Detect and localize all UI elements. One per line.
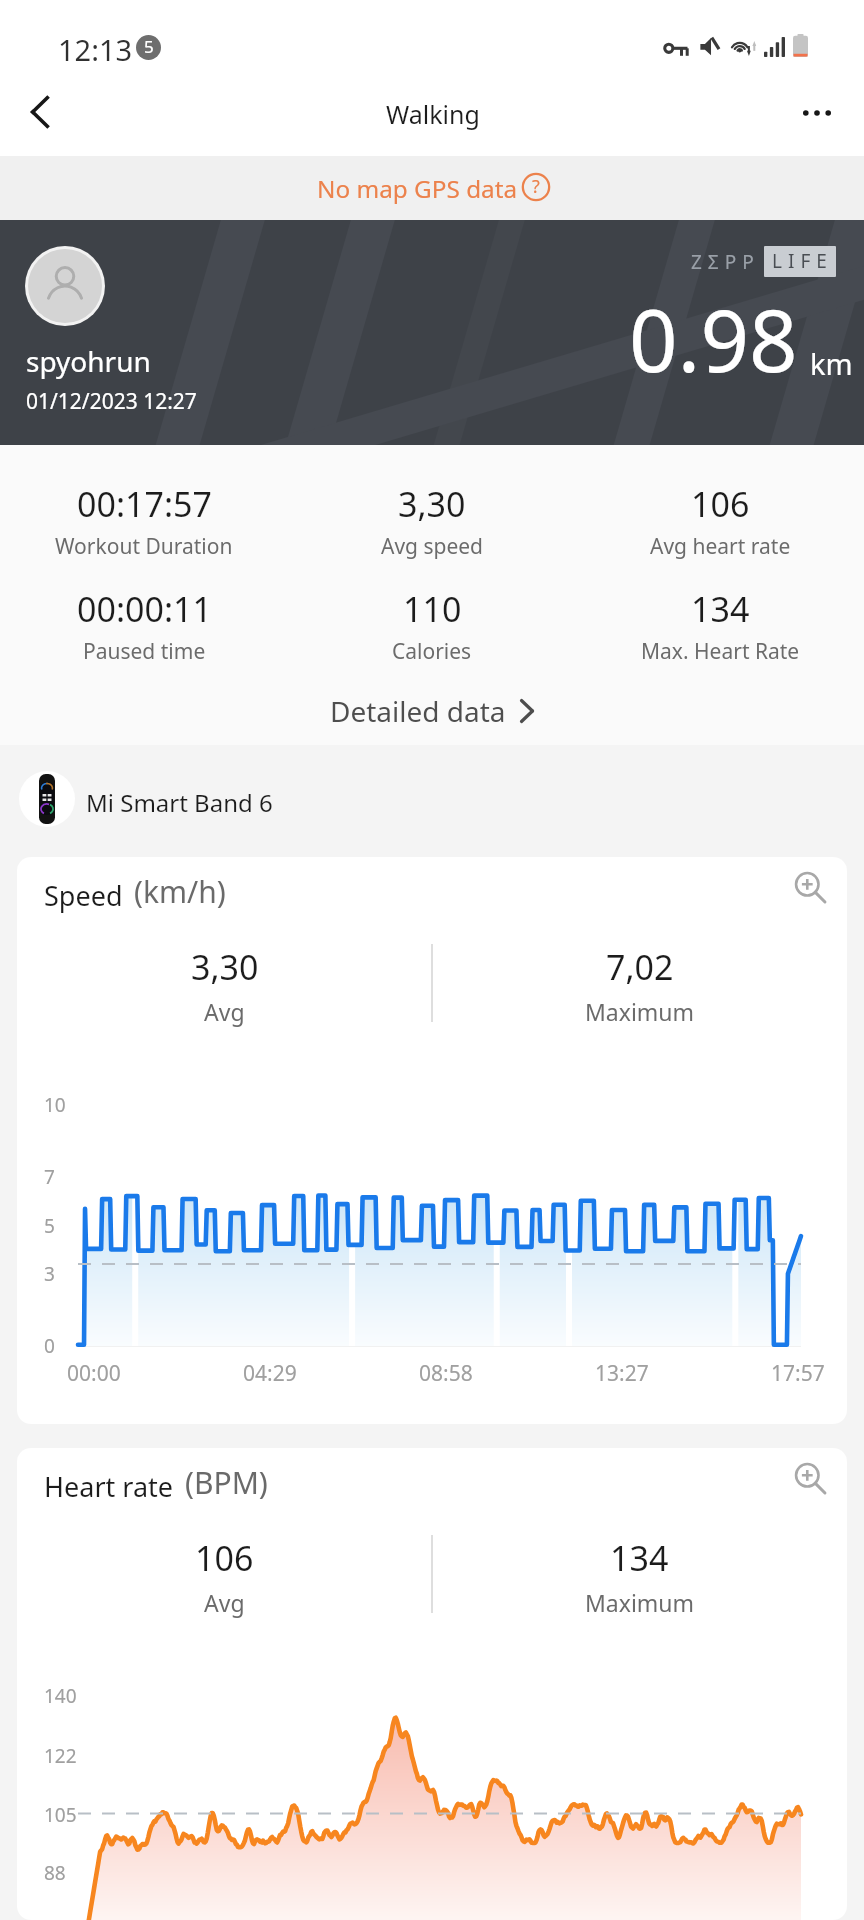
staticText: 88: [44, 1860, 66, 1886]
staticText: 04:29: [243, 1359, 297, 1388]
staticText: 105: [44, 1802, 77, 1828]
button[interactable]: No map GPS data: [0, 156, 864, 220]
staticText: 0.98: [629, 281, 798, 397]
staticText: ZΣPP: [691, 249, 760, 275]
button[interactable]: Back: [12, 84, 68, 140]
staticText: 17:57: [771, 1359, 825, 1388]
staticText: 08:58: [419, 1359, 473, 1388]
button[interactable]: Detailed data: [0, 683, 864, 739]
staticText: Heart rate: [44, 1468, 174, 1505]
staticText: LIFE: [772, 248, 833, 274]
staticText: 12:13: [58, 30, 133, 69]
staticText: 10: [44, 1092, 66, 1118]
staticText: Speed: [44, 877, 123, 914]
staticText: Avg: [204, 1587, 245, 1618]
staticText: 106: [691, 481, 750, 527]
staticText: 134: [610, 1535, 669, 1581]
staticText: 00:00: [67, 1359, 121, 1388]
staticText: Workout Duration: [55, 532, 233, 561]
button[interactable]: Profile: [28, 249, 102, 323]
staticText: No map GPS data: [317, 172, 518, 205]
staticText: Calories: [392, 637, 472, 666]
staticText: (BPM): [185, 1462, 268, 1503]
button[interactable]: Zoom in: [783, 860, 837, 914]
staticText: ?: [532, 174, 540, 199]
staticText: spyohrun: [26, 342, 151, 380]
staticText: 00:17:57: [77, 481, 212, 527]
button[interactable]: Mi Smart Band 6: [0, 745, 864, 857]
staticText: 01/12/2023 12:27: [26, 387, 197, 416]
button[interactable]: Zoom in: [783, 1451, 837, 1505]
staticText: 134: [691, 586, 750, 632]
staticText: Detailed data: [330, 692, 506, 730]
staticText: Mi Smart Band 6: [86, 786, 273, 819]
staticText: (km/h): [134, 871, 226, 912]
staticText: 7: [44, 1164, 55, 1190]
staticText: 5: [44, 1213, 55, 1239]
staticText: 13:27: [595, 1359, 649, 1388]
staticText: Paused time: [83, 637, 206, 666]
staticText: 3,30: [191, 944, 259, 990]
staticText: Avg: [204, 996, 245, 1027]
staticText: Avg heart rate: [650, 532, 791, 561]
staticText: Maximum: [585, 996, 695, 1027]
staticText: Walking: [386, 97, 480, 131]
button[interactable]: More options: [789, 85, 845, 141]
staticText: 5: [144, 35, 154, 58]
staticText: 7,02: [606, 944, 674, 990]
staticText: 00:00:11: [77, 586, 212, 632]
staticText: 106: [195, 1535, 254, 1581]
staticText: 3: [44, 1261, 55, 1287]
staticText: 3,30: [398, 481, 466, 527]
staticText: Maximum: [585, 1587, 695, 1618]
staticText: 0: [44, 1333, 55, 1359]
staticText: Avg speed: [381, 532, 484, 561]
staticText: 140: [44, 1683, 77, 1709]
staticText: 110: [403, 586, 462, 632]
staticText: km: [810, 344, 853, 383]
staticText: Max. Heart Rate: [641, 637, 800, 666]
staticText: 122: [44, 1743, 77, 1769]
